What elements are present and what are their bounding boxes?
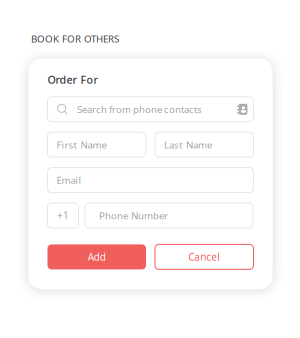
button[interactable]: First Name — [47, 132, 146, 157]
button[interactable]: Cancel — [155, 244, 253, 269]
staticText: First Name — [56, 138, 106, 151]
staticText: BOOK FOR OTHERS — [31, 32, 119, 45]
staticText: Cancel — [188, 250, 220, 264]
staticText: Add — [88, 250, 106, 264]
button[interactable]: Add — [47, 244, 146, 269]
staticText: Order For — [47, 72, 98, 87]
button[interactable]: Search from phone contacts — [47, 97, 253, 122]
button[interactable]: Last Name — [155, 132, 253, 157]
staticText: Search from phone contacts — [77, 103, 202, 116]
button[interactable]: Email — [47, 168, 253, 193]
staticText: Last Name — [164, 138, 212, 151]
button[interactable]: Phone Number — [85, 203, 253, 228]
staticText: Phone Number — [99, 209, 168, 222]
button[interactable]: +1 — [47, 203, 78, 228]
staticText: Email — [56, 173, 81, 187]
staticText: +1 — [57, 209, 69, 222]
